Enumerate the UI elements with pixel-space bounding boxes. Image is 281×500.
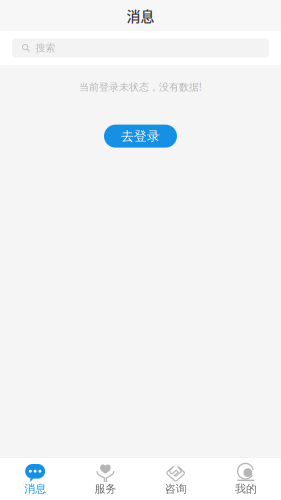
staticText: 当前登录未状态，没有数据!	[79, 80, 202, 94]
staticText: 搜索	[35, 42, 55, 54]
staticText: 我的	[235, 482, 257, 496]
button[interactable]: 咨询	[140, 458, 211, 500]
staticText: 服务	[94, 482, 116, 496]
button[interactable]: 我的	[211, 458, 281, 500]
staticText: 消息	[24, 482, 46, 496]
button[interactable]: 搜索	[12, 38, 269, 57]
staticText: 去登录	[121, 128, 160, 144]
button[interactable]: 消息	[0, 458, 70, 500]
staticText: 消息	[126, 5, 154, 26]
staticText: 咨询	[165, 482, 187, 496]
button[interactable]: 服务	[70, 458, 140, 500]
button[interactable]: 去登录	[104, 125, 177, 148]
